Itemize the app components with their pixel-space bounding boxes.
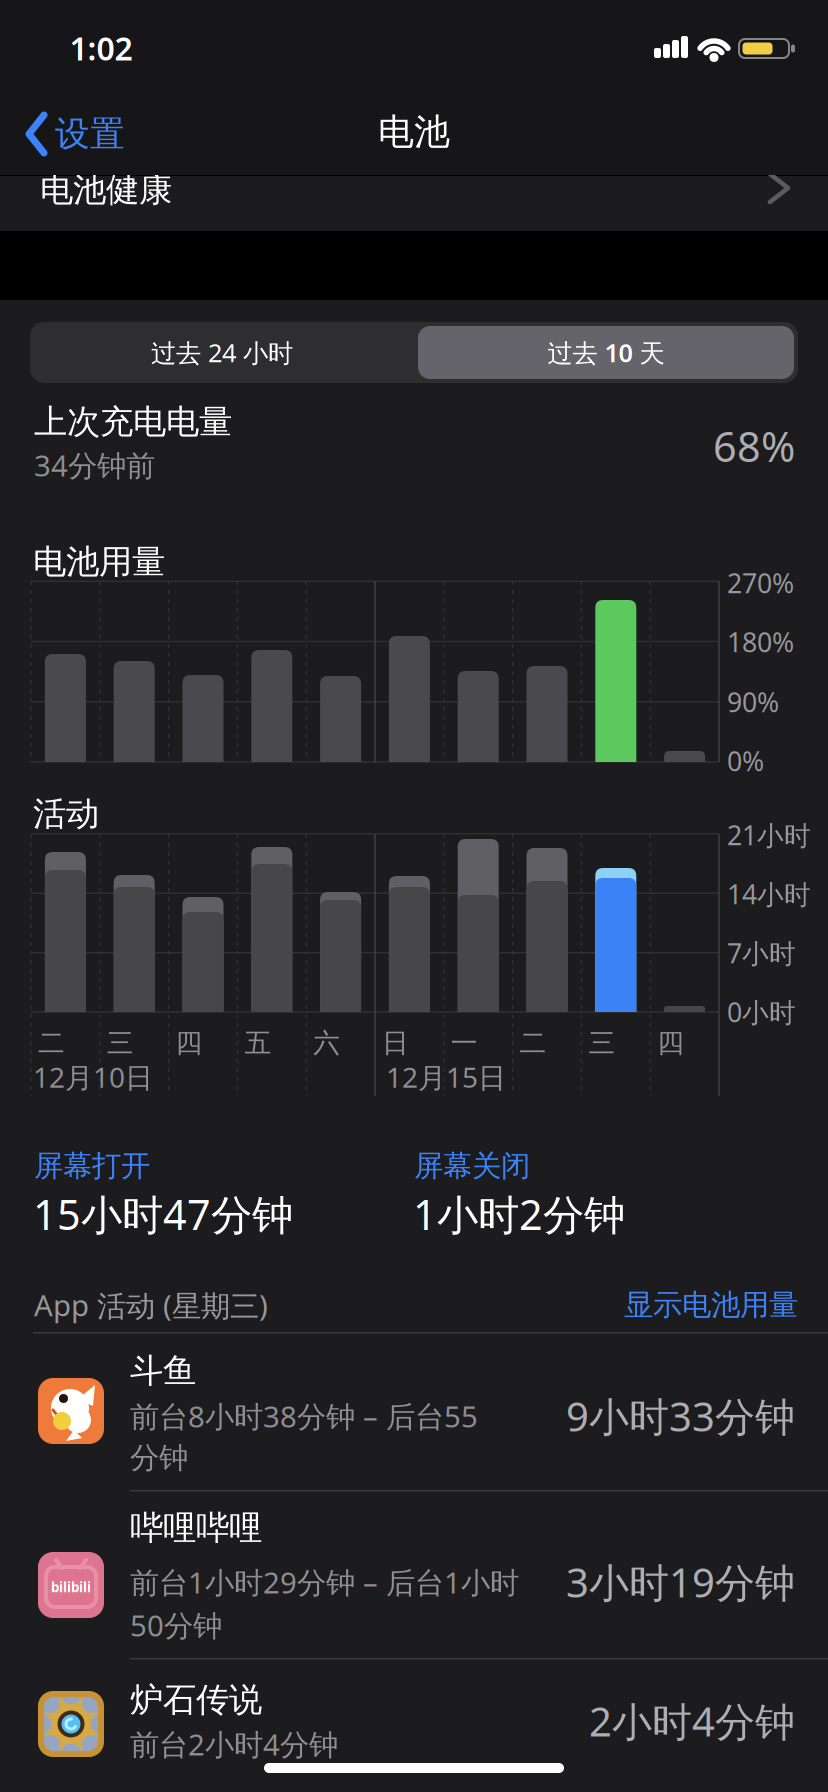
staticText: App 活动 (星期三) [34, 1285, 268, 1324]
staticText: 电池健康 [40, 169, 172, 210]
staticText: 一 [451, 1027, 478, 1059]
staticText: 二 [520, 1027, 547, 1059]
staticText: 270% [727, 565, 794, 601]
button[interactable]: bilibili [0, 1490, 828, 1658]
staticText: 2小时4分钟 [589, 1694, 795, 1747]
staticText: 12月10日 [33, 1058, 153, 1096]
button[interactable]: 显示电池用量 [538, 1283, 798, 1327]
staticText: 炉石传说 [130, 1679, 262, 1720]
staticText: 二 [38, 1027, 65, 1059]
staticText: 14小时 [727, 876, 811, 912]
staticText: 21小时 [727, 817, 811, 853]
button[interactable]: 电池健康 [0, 176, 828, 231]
staticText: bilibili [51, 1578, 91, 1596]
staticText: 3小时19分钟 [566, 1555, 795, 1608]
staticText: 50分钟 [130, 1605, 222, 1644]
staticText: 前台8小时38分钟 – 后台55 [130, 1396, 478, 1435]
button[interactable]: 炉石传说 [0, 1658, 828, 1792]
staticText: 分钟 [130, 1440, 188, 1476]
staticText: 三 [107, 1027, 134, 1059]
staticText: 三 [588, 1027, 615, 1059]
staticText: 0% [727, 743, 764, 779]
staticText: 前台2小时4分钟 [130, 1724, 338, 1763]
staticText: 0小时 [727, 994, 796, 1030]
staticText: 90% [727, 684, 779, 720]
staticText: 上次充电电量 [34, 401, 232, 442]
staticText: 电池用量 [33, 541, 165, 582]
staticText: 前台1小时29分钟 – 后台1小时 [130, 1562, 519, 1601]
staticText: 六 [313, 1027, 340, 1059]
staticText: 12月15日 [386, 1058, 506, 1096]
staticText: 1:02 [69, 27, 132, 69]
staticText: 日 [382, 1027, 409, 1059]
staticText: 180% [727, 624, 794, 660]
staticText: 屏幕关闭 [414, 1148, 530, 1184]
button[interactable]: 斗鱼 [0, 1333, 828, 1490]
staticText: 过去 10 天 [547, 336, 664, 369]
staticText: 68% [713, 419, 795, 473]
staticText: 四 [176, 1027, 203, 1059]
staticText: 1小时2分钟 [413, 1187, 625, 1241]
staticText: 7小时 [727, 935, 796, 971]
staticText: 34分钟前 [34, 445, 155, 484]
staticText: 15小时47分钟 [33, 1187, 293, 1241]
staticText: 五 [244, 1027, 271, 1059]
staticText: 哔哩哔哩 [130, 1507, 262, 1548]
button[interactable]: 设置 [27, 110, 217, 158]
staticText: 过去 24 小时 [151, 336, 293, 369]
staticText: 设置 [55, 113, 125, 155]
staticText: 电池 [378, 110, 450, 154]
button[interactable]: 过去 24 小时 [30, 322, 414, 383]
staticText: 活动 [33, 793, 99, 834]
button[interactable]: 过去 10 天 [418, 326, 794, 379]
staticText: 四 [657, 1027, 684, 1059]
staticText: 斗鱼 [130, 1350, 196, 1391]
staticText: 屏幕打开 [34, 1148, 150, 1184]
staticText: 显示电池用量 [624, 1287, 798, 1323]
staticText: 9小时33分钟 [566, 1389, 795, 1442]
